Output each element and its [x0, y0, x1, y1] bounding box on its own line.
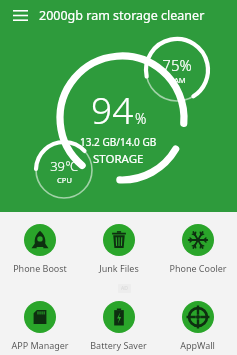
staticText: 13.2 GB/14.0 GB	[80, 135, 157, 149]
button[interactable]: Phone Cooler	[158, 220, 237, 278]
staticText: Battery Saver	[90, 339, 147, 351]
staticText: STORAGE	[93, 151, 144, 167]
button[interactable]: Open navigation menu	[9, 4, 31, 26]
staticText: Junk Files	[99, 262, 139, 274]
staticText: 2000gb ram storage cleaner	[39, 7, 205, 24]
staticText: %	[135, 109, 147, 128]
staticText: 39℃	[50, 157, 78, 175]
staticText: 94	[91, 84, 134, 134]
staticText: Phone Cooler	[169, 262, 227, 274]
staticText: CPU	[57, 175, 72, 185]
staticText: 75%	[162, 55, 192, 75]
staticText: RAM	[169, 75, 186, 85]
button[interactable]: Battery Saver	[79, 297, 158, 355]
button[interactable]: AppWall	[158, 297, 237, 355]
staticText: AppWall	[180, 339, 215, 351]
button[interactable]: Phone Boost	[0, 220, 79, 278]
staticText: APP Manager	[11, 339, 69, 351]
staticText: Phone Boost	[13, 262, 67, 274]
staticText: AD	[121, 285, 128, 292]
button[interactable]: APP Manager	[0, 297, 79, 355]
button[interactable]: Junk Files	[79, 220, 158, 278]
